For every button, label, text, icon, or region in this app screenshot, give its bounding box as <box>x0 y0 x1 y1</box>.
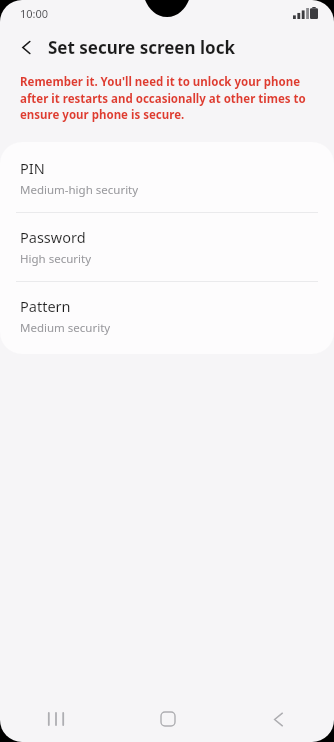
staticText: High security <box>20 251 92 267</box>
staticText: Set secure screen lock <box>48 36 235 59</box>
staticText: Medium security <box>20 320 111 336</box>
button[interactable]: Back <box>223 696 334 742</box>
button[interactable]: Password <box>0 213 334 281</box>
button[interactable]: Back <box>8 29 44 65</box>
button[interactable]: PIN <box>0 142 334 212</box>
button[interactable]: Recent apps <box>0 696 112 742</box>
staticText: PIN <box>20 158 45 178</box>
button[interactable]: Pattern <box>0 282 334 354</box>
staticText: Password <box>20 227 86 247</box>
staticText: Medium-high security <box>20 182 139 198</box>
button[interactable]: Home <box>112 696 223 742</box>
staticText: Remember it. You'll need it to unlock yo… <box>20 74 320 122</box>
staticText: Pattern <box>20 296 71 316</box>
staticText: 10:00 <box>20 6 49 21</box>
